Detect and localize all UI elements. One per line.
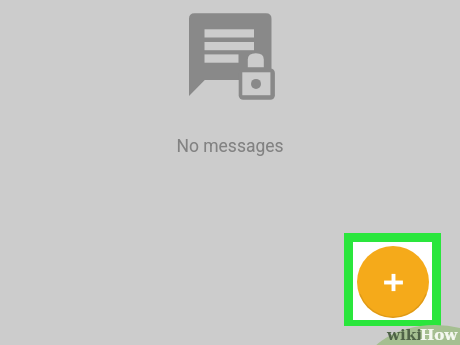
staticText: wiki [387, 326, 422, 344]
button[interactable]: New message [357, 246, 429, 318]
staticText: No messages [0, 136, 460, 157]
staticText: How [420, 326, 458, 344]
